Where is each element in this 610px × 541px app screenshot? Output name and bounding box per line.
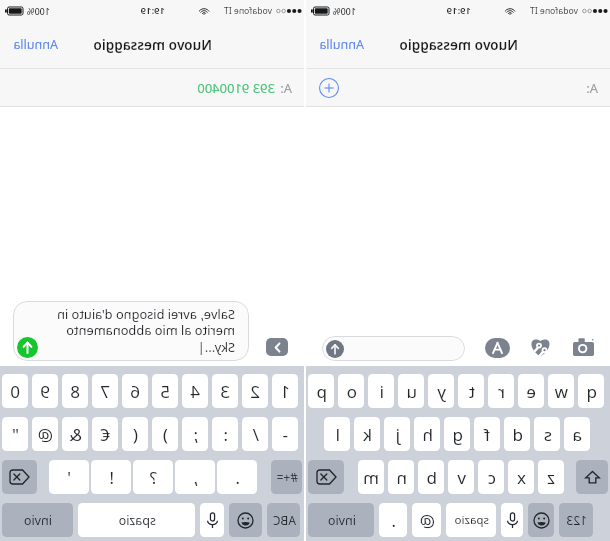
button[interactable]: 9 bbox=[32, 374, 58, 408]
button[interactable]: p bbox=[308, 374, 334, 408]
button[interactable]: 5 bbox=[152, 374, 178, 408]
staticText: k bbox=[362, 423, 372, 446]
button[interactable] bbox=[2, 460, 37, 494]
button[interactable] bbox=[200, 503, 224, 537]
button[interactable]: € bbox=[92, 417, 118, 451]
button[interactable] bbox=[576, 460, 608, 494]
button[interactable]: a bbox=[564, 417, 590, 451]
button[interactable]: d bbox=[504, 417, 530, 451]
button[interactable]: o bbox=[338, 374, 364, 408]
staticText: x bbox=[517, 466, 526, 489]
button[interactable]: k bbox=[354, 417, 380, 451]
staticText: 100% bbox=[332, 5, 356, 17]
button[interactable]: ' bbox=[49, 460, 89, 494]
button[interactable]: 4 bbox=[182, 374, 208, 408]
button[interactable]: n bbox=[388, 460, 414, 494]
button[interactable]: 7 bbox=[92, 374, 118, 408]
button[interactable]: @ bbox=[32, 417, 58, 451]
staticText: ABC bbox=[272, 512, 296, 528]
staticText: spazio bbox=[454, 512, 489, 528]
button[interactable]: Invia messaggio bbox=[17, 337, 38, 358]
button[interactable]: invio bbox=[2, 503, 73, 537]
button[interactable]: w bbox=[548, 374, 574, 408]
button[interactable]: . bbox=[379, 503, 407, 537]
button[interactable]: ; bbox=[182, 417, 208, 451]
button[interactable]: Digital Touch bbox=[528, 335, 553, 358]
button[interactable]: . bbox=[217, 460, 257, 494]
button[interactable]: t bbox=[458, 374, 484, 408]
button[interactable] bbox=[308, 460, 344, 494]
button[interactable]: ! bbox=[91, 460, 131, 494]
staticText: 6 bbox=[130, 380, 140, 403]
staticText: j bbox=[395, 423, 400, 446]
staticText: - bbox=[282, 423, 288, 446]
button[interactable]: Fotocamera bbox=[573, 338, 594, 356]
button[interactable] bbox=[501, 503, 523, 537]
button[interactable]: f bbox=[474, 417, 500, 451]
button[interactable]: b bbox=[418, 460, 444, 494]
button[interactable]: s bbox=[534, 417, 560, 451]
staticText: ) bbox=[162, 423, 168, 446]
staticText: @ bbox=[37, 423, 53, 446]
button[interactable]: 393 9100400 bbox=[197, 79, 292, 97]
button[interactable]: c bbox=[478, 460, 504, 494]
button[interactable]: g bbox=[444, 417, 470, 451]
staticText: ; bbox=[193, 423, 198, 446]
staticText: vodafone IT bbox=[224, 5, 272, 17]
button[interactable]: #+= bbox=[271, 460, 302, 494]
staticText: r bbox=[497, 380, 505, 403]
button[interactable]: r bbox=[488, 374, 514, 408]
staticText: : bbox=[223, 423, 228, 446]
staticText: Nuovo messaggio bbox=[93, 35, 212, 54]
staticText: Nuovo messaggio bbox=[399, 35, 518, 54]
button[interactable]: invio bbox=[308, 503, 374, 537]
button[interactable]: spazio bbox=[78, 503, 195, 537]
button[interactable]: m bbox=[358, 460, 384, 494]
button[interactable]: Annulla bbox=[306, 28, 377, 61]
button[interactable]: 6 bbox=[122, 374, 148, 408]
button[interactable]: ABC bbox=[267, 503, 300, 537]
button[interactable]: y bbox=[428, 374, 454, 408]
button[interactable]: Aggiungi contatto bbox=[319, 78, 339, 98]
other: Invia bbox=[326, 340, 344, 358]
button[interactable]: Salve, avrei bisogno d'aiuto in merito a… bbox=[13, 301, 249, 361]
button[interactable]: spazio bbox=[446, 503, 496, 537]
button[interactable]: / bbox=[242, 417, 268, 451]
button[interactable]: j bbox=[384, 417, 410, 451]
button[interactable]: u bbox=[398, 374, 424, 408]
button[interactable]: v bbox=[448, 460, 474, 494]
button[interactable]: 1 bbox=[272, 374, 298, 408]
button[interactable]: " bbox=[2, 417, 28, 451]
button[interactable]: & bbox=[62, 417, 88, 451]
button[interactable]: 2 bbox=[242, 374, 268, 408]
button[interactable] bbox=[528, 503, 554, 537]
button[interactable]: App Store bbox=[485, 338, 510, 358]
button[interactable]: z bbox=[538, 460, 564, 494]
button[interactable]: ( bbox=[122, 417, 148, 451]
button[interactable] bbox=[229, 503, 262, 537]
staticText: a bbox=[572, 423, 582, 446]
button[interactable]: q bbox=[578, 374, 604, 408]
button[interactable]: Invia bbox=[322, 336, 465, 361]
button[interactable]: @ bbox=[412, 503, 441, 537]
button[interactable]: Annulla bbox=[0, 28, 71, 61]
button[interactable]: Espandi barra bbox=[266, 338, 288, 356]
button[interactable]: 8 bbox=[62, 374, 88, 408]
button[interactable]: 123 bbox=[559, 503, 593, 537]
button[interactable]: : bbox=[212, 417, 238, 451]
button[interactable]: ) bbox=[152, 417, 178, 451]
button[interactable]: x bbox=[508, 460, 534, 494]
button[interactable]: , bbox=[175, 460, 215, 494]
button[interactable]: 3 bbox=[212, 374, 238, 408]
staticText: 123 bbox=[566, 512, 587, 528]
staticText: 19:19 bbox=[140, 4, 165, 17]
staticText: invio bbox=[23, 512, 52, 529]
button[interactable]: ? bbox=[133, 460, 173, 494]
button[interactable]: e bbox=[518, 374, 544, 408]
button[interactable]: 0 bbox=[2, 374, 28, 408]
staticText: A: bbox=[280, 79, 292, 97]
button[interactable]: h bbox=[414, 417, 440, 451]
button[interactable]: i bbox=[368, 374, 394, 408]
button[interactable]: l bbox=[324, 417, 350, 451]
button[interactable]: - bbox=[272, 417, 298, 451]
